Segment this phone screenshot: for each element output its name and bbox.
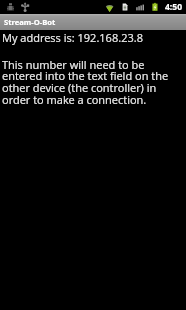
staticText: Stream-O-Bot (4, 17, 56, 27)
staticText: 4:50 (165, 1, 182, 13)
staticText: This number will need to be entered into… (2, 57, 182, 107)
other: Status bar (0, 0, 186, 14)
staticText: My address is: 192.168.23.8 (2, 30, 143, 45)
